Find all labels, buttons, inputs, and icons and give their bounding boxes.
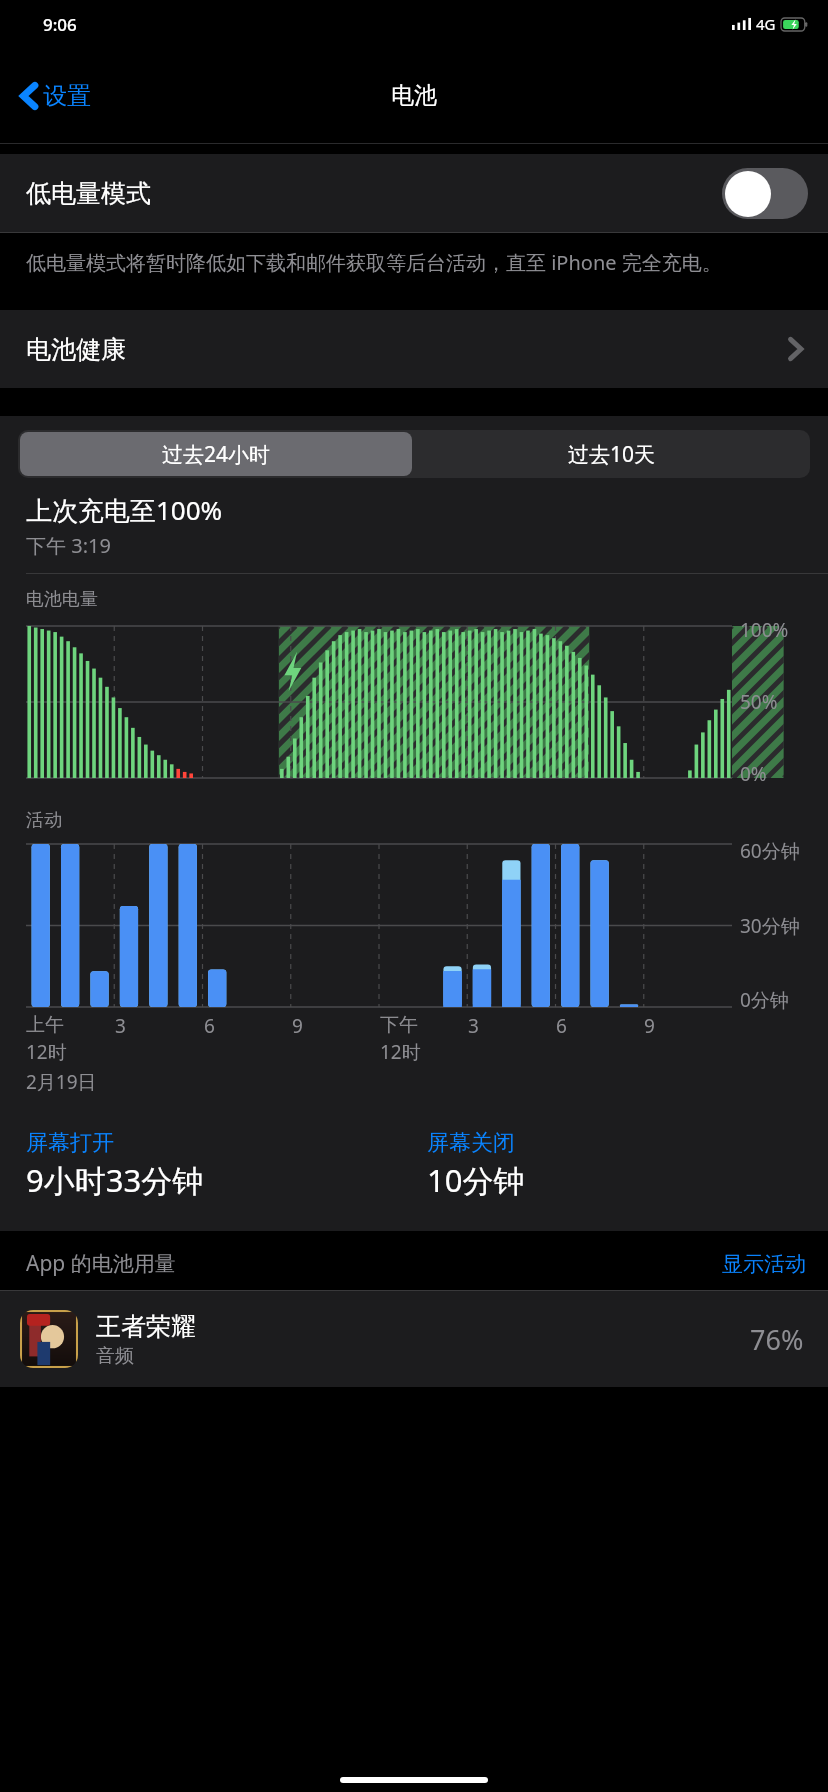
staticText: 9:06 <box>43 13 77 36</box>
button[interactable]: 显示活动 <box>722 1251 806 1277</box>
staticText: 显示活动 <box>722 1251 806 1277</box>
button[interactable]: 低电量模式开关 <box>722 168 808 219</box>
staticText: 活动 <box>26 809 62 832</box>
staticText: 0% <box>740 761 767 787</box>
staticText: 6 <box>556 1013 567 1039</box>
staticText: 3 <box>468 1013 479 1039</box>
staticText: 过去24小时 <box>162 440 271 469</box>
button[interactable]: 低电量模式 <box>0 154 828 232</box>
button[interactable]: 设置 <box>16 75 97 117</box>
staticText: 12时 <box>26 1039 67 1065</box>
button[interactable]: 过去24小时 <box>20 432 412 476</box>
staticText: 100% <box>740 617 789 643</box>
staticText: 60分钟 <box>740 838 800 864</box>
staticText: 设置 <box>43 81 91 111</box>
staticText: App 的电池用量 <box>26 1249 176 1278</box>
staticText: 9小时33分钟 <box>26 1159 204 1201</box>
staticText: 30分钟 <box>740 913 800 939</box>
staticText: 低电量模式将暂时降低如下载和邮件获取等后台活动，直至 iPhone 完全充电。 <box>26 249 722 276</box>
staticText: 2月19日 <box>26 1069 97 1095</box>
staticText: 屏幕关闭 <box>427 1129 515 1157</box>
staticText: 9 <box>292 1013 303 1039</box>
staticText: 10分钟 <box>427 1159 525 1201</box>
staticText: 12时 <box>380 1039 421 1065</box>
staticText: 下午 <box>380 1013 418 1037</box>
staticText: 9 <box>644 1013 655 1039</box>
button[interactable]: 王者荣耀 <box>0 1291 828 1387</box>
staticText: 电池电量 <box>26 588 98 611</box>
staticText: 下午 3:19 <box>26 532 111 559</box>
staticText: 低电量模式 <box>26 178 151 209</box>
staticText: 3 <box>115 1013 126 1039</box>
other: 打开 <box>789 338 802 360</box>
staticText: 4G <box>756 14 776 34</box>
staticText: 电池 <box>391 81 437 110</box>
staticText: 上午 <box>26 1013 64 1037</box>
staticText: 电池健康 <box>26 334 126 365</box>
staticText: 过去10天 <box>568 440 656 469</box>
staticText: 屏幕打开 <box>26 1129 114 1157</box>
staticText: 王者荣耀 <box>96 1311 196 1342</box>
staticText: 0分钟 <box>740 987 789 1013</box>
button[interactable]: 过去10天 <box>414 430 810 478</box>
staticText: 6 <box>204 1013 215 1039</box>
button[interactable]: 电池健康 <box>0 310 828 388</box>
staticText: 76% <box>750 1321 804 1358</box>
staticText: 音频 <box>96 1344 134 1368</box>
staticText: 50% <box>740 689 778 715</box>
staticText: 上次充电至100% <box>26 492 223 528</box>
